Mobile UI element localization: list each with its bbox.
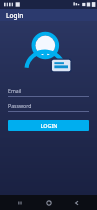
other: Account: [26, 32, 72, 77]
button[interactable]: Home: [41, 195, 57, 210]
button[interactable]: Recents: [12, 195, 28, 210]
staticText: Email: [8, 87, 22, 94]
button[interactable]: Email: [8, 87, 89, 97]
button[interactable]: Back: [69, 195, 85, 210]
staticText: Login: [6, 11, 24, 20]
staticText: Password: [8, 102, 32, 109]
staticText: LOGIN: [40, 122, 58, 129]
button[interactable]: LOGIN: [8, 120, 89, 131]
button[interactable]: Password: [8, 102, 89, 112]
